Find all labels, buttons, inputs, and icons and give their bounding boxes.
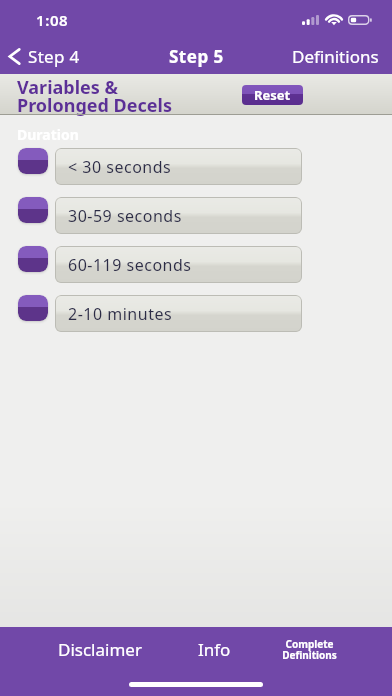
button[interactable]: Definitions <box>279 34 392 74</box>
staticText: Step 5 <box>169 45 224 68</box>
staticText: Definitions <box>292 45 379 68</box>
staticText: Variables & Prolonged Decels <box>17 75 172 116</box>
button[interactable]: Complete Definitions <box>265 627 353 671</box>
button[interactable]: Select 60-119 seconds <box>18 246 48 272</box>
button[interactable]: Select < 30 seconds <box>18 148 48 174</box>
button[interactable]: Step 4 <box>0 34 90 74</box>
button[interactable]: 60-119 seconds <box>55 246 302 283</box>
staticText: Duration <box>17 125 79 144</box>
button[interactable]: Reset <box>242 85 303 105</box>
staticText: 30-59 seconds <box>68 205 182 227</box>
staticText: 2-10 minutes <box>68 303 173 325</box>
button[interactable]: 2-10 minutes <box>55 295 302 332</box>
button[interactable]: < 30 seconds <box>55 148 302 185</box>
button[interactable]: Disclaimer <box>42 627 157 671</box>
button[interactable]: Select 30-59 seconds <box>18 197 48 223</box>
staticText: Reset <box>254 86 291 104</box>
button[interactable]: Select 2-10 minutes <box>18 295 48 321</box>
staticText: Info <box>198 638 231 661</box>
staticText: < 30 seconds <box>68 156 172 178</box>
staticText: Step 4 <box>28 45 80 68</box>
staticText: 1:08 <box>36 10 69 30</box>
staticText: 60-119 seconds <box>68 254 192 276</box>
button[interactable]: 30-59 seconds <box>55 197 302 234</box>
staticText: Complete Definitions <box>282 637 337 662</box>
button[interactable]: Info <box>169 627 259 671</box>
staticText: Disclaimer <box>58 638 142 661</box>
